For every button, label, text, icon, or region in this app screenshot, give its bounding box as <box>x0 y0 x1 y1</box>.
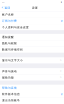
button[interactable]: 隐私与权限 <box>0 40 64 46</box>
staticText: 隐私与权限 <box>2 42 17 45</box>
button[interactable]: 个人资料与安全设置 <box>0 24 64 30</box>
staticText: 辅助功能 <box>2 76 14 79</box>
button[interactable]: 退出当前账号 <box>0 97 64 104</box>
staticText: > <box>60 69 62 73</box>
staticText: ▮ <box>61 1 62 3</box>
staticText: 账户名称 <box>2 13 14 16</box>
button[interactable]: 辅助功能 <box>0 74 64 81</box>
button[interactable]: 通知提醒 <box>0 34 64 40</box>
button[interactable]: 数据与存储空间 <box>0 46 64 53</box>
button[interactable]: 帮助与反馈 <box>0 85 64 91</box>
staticText: 个人资料与安全设置 <box>2 26 29 29</box>
button[interactable]: 账户名称 <box>0 11 64 18</box>
staticText: 显示与文字大小 <box>2 59 23 62</box>
staticText: > <box>60 59 62 62</box>
button[interactable]: < 返回 <box>1 6 10 9</box>
staticText: < 返回 <box>1 6 10 9</box>
staticText: v <box>61 92 62 96</box>
staticText: 声音与振动 <box>2 70 17 73</box>
staticText: 通知提醒 <box>2 35 14 39</box>
staticText: 设置 <box>32 6 38 9</box>
staticText: 数据与存储空间 <box>2 48 23 51</box>
button[interactable]: 显示与文字大小 <box>0 57 64 64</box>
staticText: 软件版本信息 <box>2 92 20 96</box>
staticText: 9:41 <box>2 1 5 3</box>
staticText: 帮助与反馈 <box>2 86 17 89</box>
staticText: 订阅与付费 <box>2 19 17 23</box>
button[interactable]: 声音与振动 <box>0 68 64 74</box>
button[interactable]: 软件版本信息 <box>0 91 64 97</box>
staticText: > <box>60 76 62 79</box>
staticText: 退出当前账号 <box>2 99 20 102</box>
staticText: v <box>61 19 62 23</box>
button[interactable]: 订阅与付费 <box>0 18 64 24</box>
